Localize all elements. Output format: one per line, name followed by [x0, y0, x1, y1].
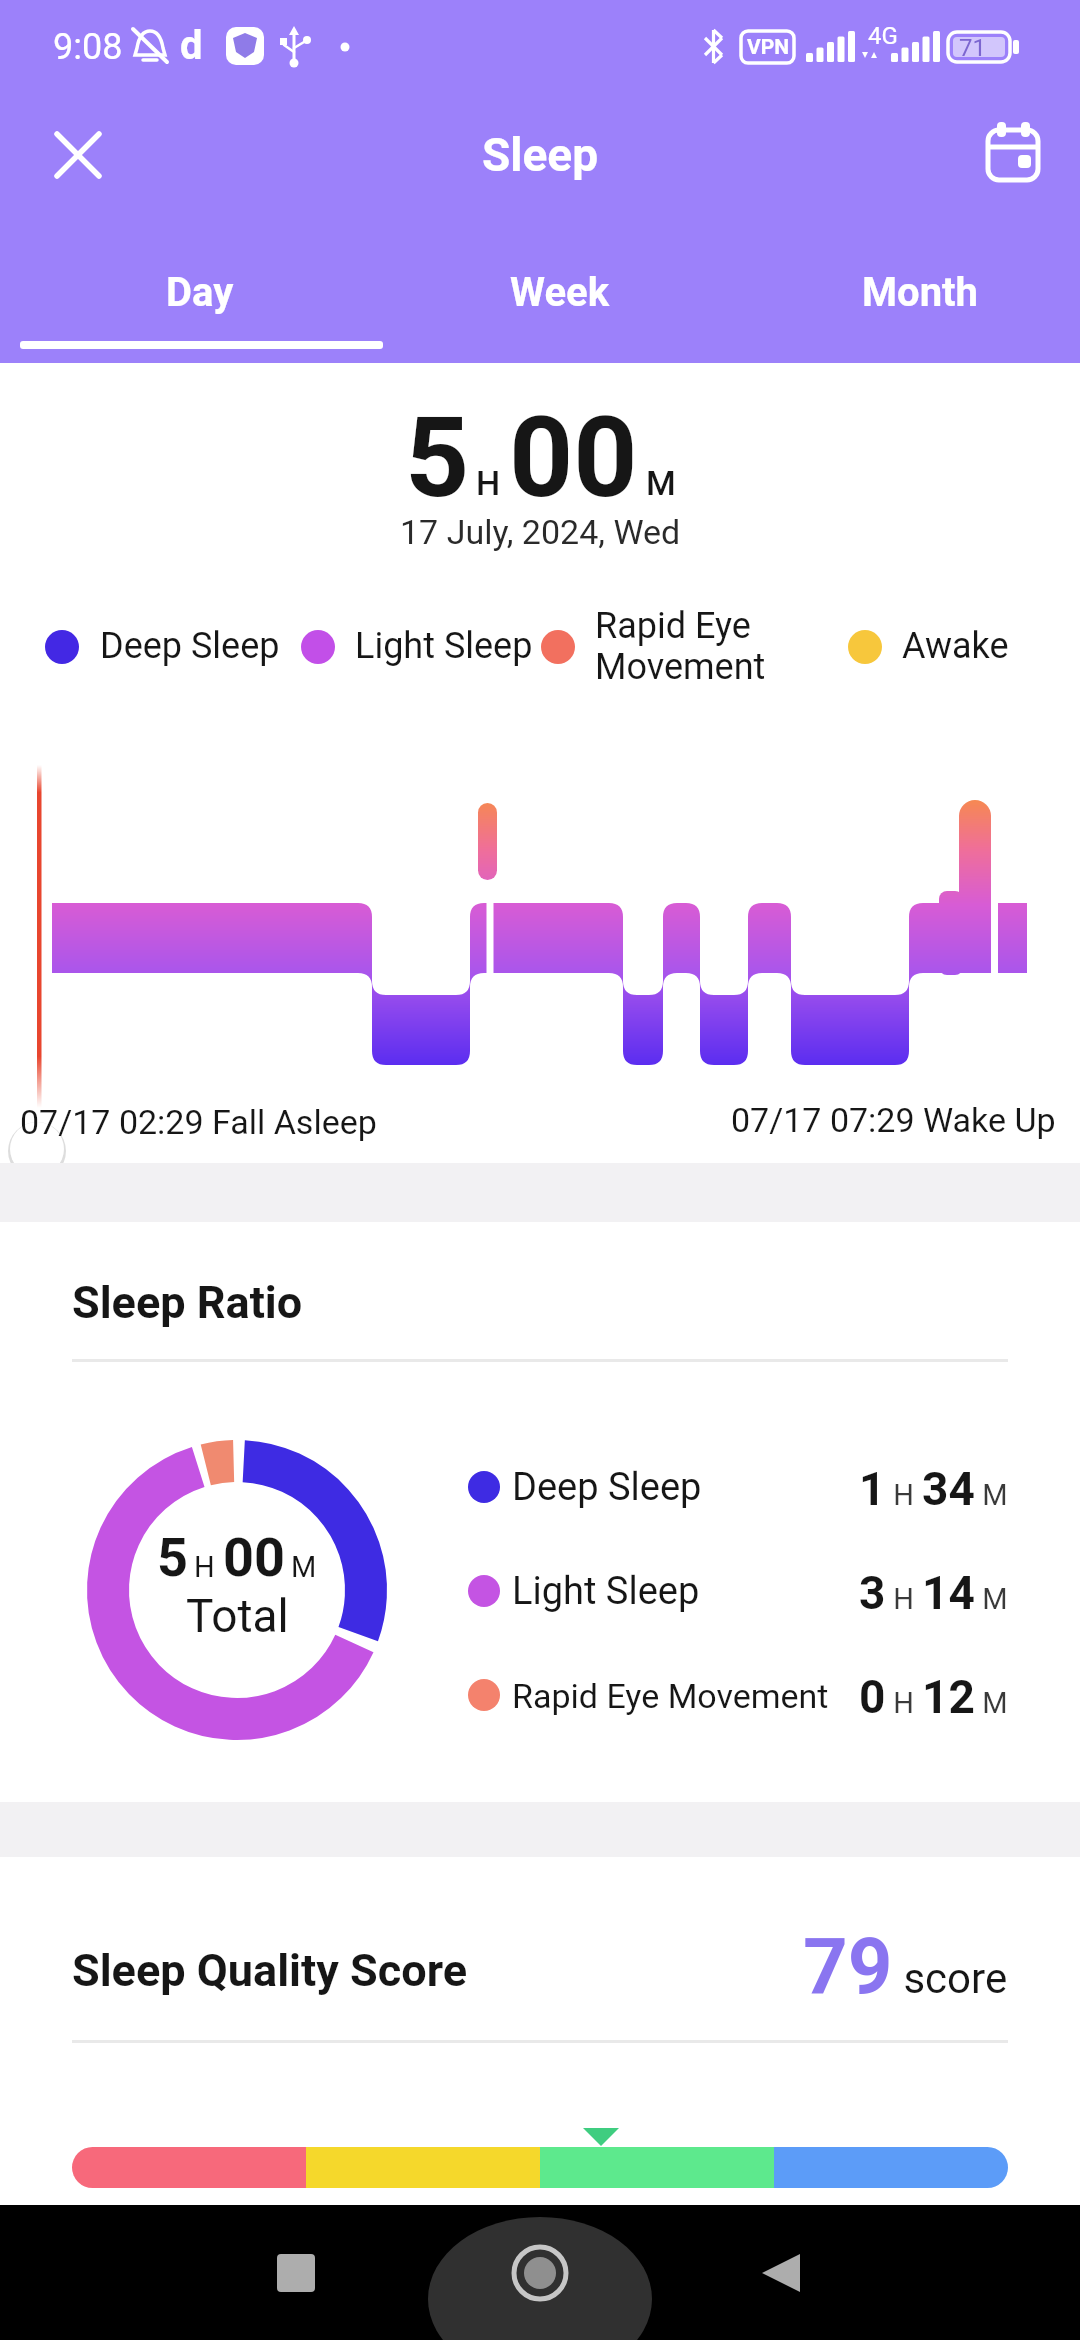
button[interactable]: Week [380, 256, 740, 328]
staticText: 07/17 02:29 Fall Asleep [20, 1102, 377, 1142]
button[interactable]: Month [740, 256, 1080, 328]
button[interactable] [40, 117, 116, 193]
staticText: 71 [959, 34, 986, 62]
staticText: 17 July, 2024, Wed [400, 512, 681, 552]
staticText: Rapid Eye Movement [512, 1676, 829, 1716]
staticText: d [180, 22, 203, 69]
button[interactable] [246, 2223, 346, 2323]
staticText: Rapid Eye Movement [595, 605, 766, 688]
button[interactable]: Day [20, 256, 380, 328]
staticText: M [975, 1478, 1008, 1512]
staticText: H [886, 1686, 922, 1720]
staticText: 0 [859, 1670, 886, 1724]
staticText: H [886, 1478, 922, 1512]
staticText: Total [186, 1589, 289, 1643]
staticText: 5 [157, 1526, 188, 1589]
staticText: H [194, 1550, 215, 1584]
staticText: 3 [859, 1566, 886, 1620]
staticText: M [975, 1686, 1008, 1720]
staticText: Deep Sleep [512, 1465, 702, 1510]
staticText: Week [510, 269, 610, 316]
staticText: Day [166, 269, 234, 316]
staticText: M [646, 463, 676, 503]
staticText: Light Sleep [355, 625, 533, 667]
staticText: M [291, 1550, 317, 1584]
staticText: 14 [922, 1566, 975, 1620]
staticText: score [893, 1954, 1008, 2003]
staticText: 5 [405, 392, 470, 523]
button[interactable] [731, 2223, 831, 2323]
staticText: 79 [803, 1922, 893, 2013]
staticText: VPN [747, 35, 790, 60]
staticText: H [476, 463, 501, 503]
staticText: 4G [868, 22, 898, 50]
staticText: 12 [922, 1670, 975, 1724]
staticText: 1 [859, 1462, 886, 1516]
staticText: Sleep Ratio [72, 1276, 303, 1329]
staticText: Awake [902, 625, 1009, 667]
button[interactable] [972, 117, 1048, 193]
staticText: 07/17 07:29 Wake Up [731, 1100, 1056, 1140]
staticText: Month [862, 269, 978, 316]
staticText: 34 [922, 1462, 975, 1516]
staticText: 00 [509, 392, 638, 523]
button[interactable] [490, 2223, 590, 2323]
staticText: 00 [223, 1526, 285, 1589]
staticText: Sleep [482, 128, 599, 182]
staticText: H [886, 1582, 922, 1616]
staticText: Light Sleep [512, 1569, 700, 1614]
staticText: 9:08 [53, 26, 123, 68]
staticText: Sleep Quality Score [72, 1944, 468, 1997]
staticText: M [975, 1582, 1008, 1616]
staticText: Deep Sleep [100, 625, 280, 667]
